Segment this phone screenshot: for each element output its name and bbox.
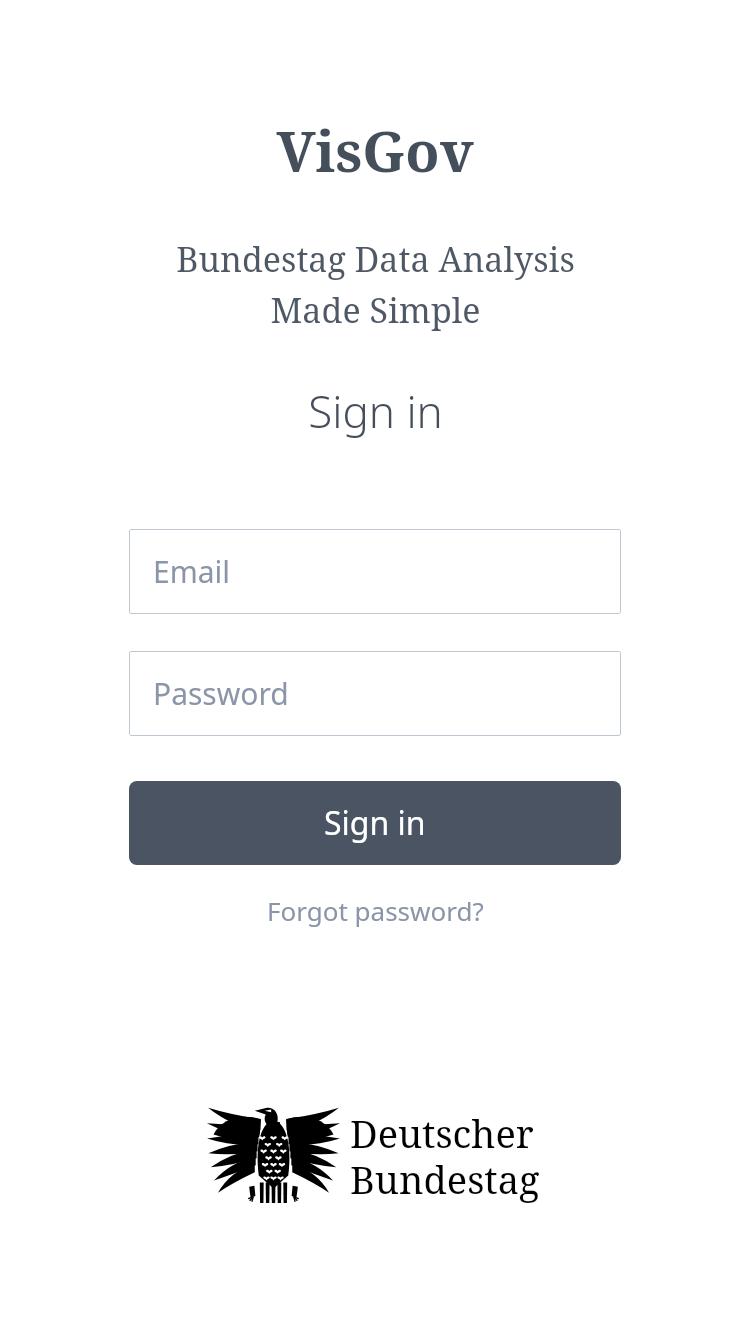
- staticText: Sign in: [308, 381, 443, 441]
- button[interactable]: Password: [129, 651, 621, 736]
- staticText: Password: [153, 673, 289, 714]
- other: Deutscher Bundestag: [211, 1102, 540, 1210]
- staticText: VisGov: [276, 112, 474, 188]
- button[interactable]: Forgot password?: [129, 889, 621, 932]
- staticText: Sign in: [324, 801, 426, 845]
- staticText: Forgot password?: [267, 893, 484, 928]
- button[interactable]: Sign in: [129, 781, 621, 865]
- staticText: Deutscher Bundestag: [350, 1107, 540, 1205]
- button[interactable]: Email: [129, 529, 621, 614]
- staticText: Bundestag Data Analysis Made Simple: [176, 236, 575, 333]
- staticText: Email: [153, 551, 231, 592]
